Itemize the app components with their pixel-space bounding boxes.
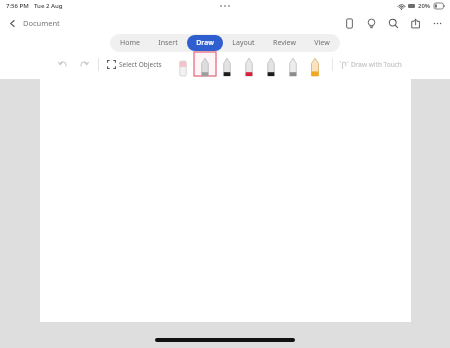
button[interactable]: Draw with Touch	[338, 58, 404, 71]
staticText: Select Objects	[119, 60, 162, 69]
staticText: Draw with Touch	[351, 60, 402, 69]
button[interactable]: Document	[4, 16, 64, 30]
button[interactable]: Select Objects	[105, 58, 164, 71]
button[interactable]: Insert	[149, 35, 187, 51]
button[interactable]: Home	[111, 35, 149, 51]
staticText: Review	[273, 38, 296, 48]
button[interactable]: Pen	[238, 52, 260, 76]
button[interactable]: Selected pen	[194, 52, 216, 76]
staticText: Insert	[158, 38, 178, 48]
staticText: 7:56 PM	[6, 2, 29, 10]
button[interactable]: Pen	[216, 52, 238, 76]
staticText: Home	[120, 38, 140, 48]
button[interactable]: Layout	[223, 35, 264, 51]
staticText: Tue 2 Aug	[34, 2, 63, 10]
staticText: View	[314, 38, 330, 48]
button[interactable]: Pen	[260, 52, 282, 76]
button[interactable]: Tell me	[362, 14, 380, 32]
button[interactable]: Search	[384, 14, 402, 32]
button[interactable]: Pen	[304, 52, 326, 76]
button[interactable]: View	[305, 35, 339, 51]
button[interactable]: More options	[428, 14, 446, 32]
staticText: 20%	[418, 2, 431, 10]
button[interactable]: Share	[406, 14, 424, 32]
staticText: Draw	[196, 38, 214, 48]
staticText: Document	[23, 18, 60, 28]
button[interactable]: Review	[264, 35, 305, 51]
button[interactable]: Pen	[172, 52, 194, 76]
button[interactable]: Undo	[55, 56, 71, 72]
staticText: Layout	[232, 38, 255, 48]
button[interactable]: Redo	[76, 56, 92, 72]
button[interactable]: Draw	[187, 35, 223, 51]
button[interactable]: Mobile view	[340, 14, 358, 32]
button[interactable]: Pen	[282, 52, 304, 76]
